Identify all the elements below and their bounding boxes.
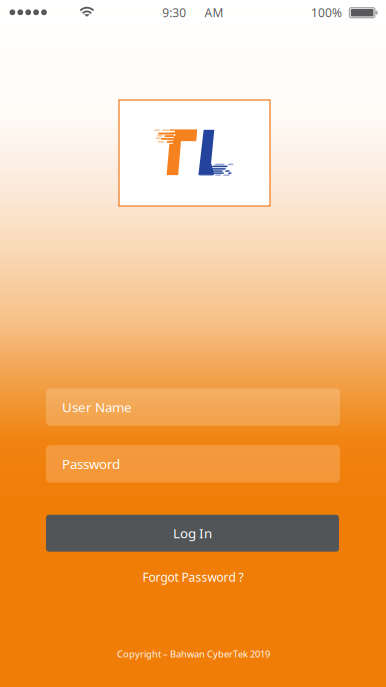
staticText: AM [204,5,223,21]
staticText: User Name [62,398,132,416]
staticText: Copyright – Bahwan CyberTek 2019 [117,648,270,660]
staticText: Log In [173,524,212,542]
button[interactable]: Log In [46,515,339,552]
staticText: Forgot Password ? [142,569,243,585]
button[interactable]: Forgot Password ? [132,564,253,590]
staticText: 9:30 [162,5,186,21]
staticText: Password [62,455,120,473]
staticText: 100% [311,5,342,21]
